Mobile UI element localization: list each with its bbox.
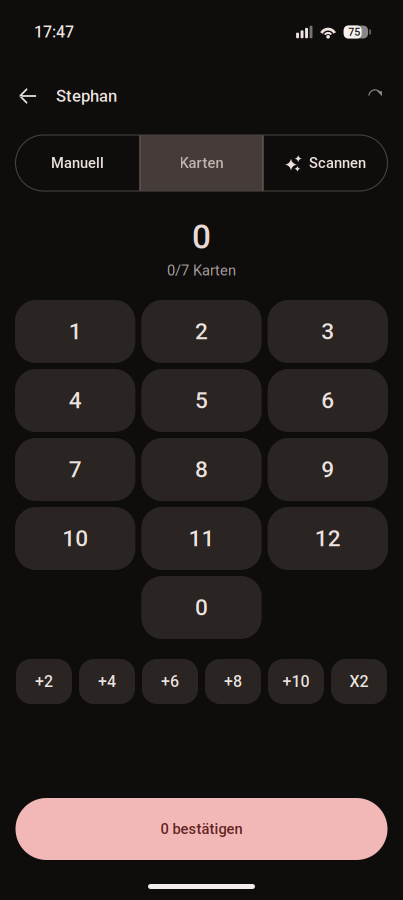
staticText: 4 xyxy=(69,387,82,414)
button[interactable]: +2 xyxy=(16,659,72,704)
staticText: 3 xyxy=(321,318,334,345)
staticText: 12 xyxy=(315,525,341,552)
button[interactable]: Manuell xyxy=(15,135,139,191)
staticText: +8 xyxy=(224,672,242,691)
button[interactable]: Refresh xyxy=(357,76,395,116)
staticText: 6 xyxy=(321,387,334,414)
button[interactable]: Scannen xyxy=(263,135,387,191)
staticText: 10 xyxy=(62,525,88,552)
staticText: 8 xyxy=(195,456,208,483)
staticText: +10 xyxy=(282,672,309,691)
button[interactable]: X2 xyxy=(331,659,387,704)
staticText: 1 xyxy=(69,318,82,345)
staticText: 0 xyxy=(195,594,208,621)
staticText: +6 xyxy=(161,672,179,691)
staticText: 0 xyxy=(192,217,211,257)
button[interactable]: 3 xyxy=(268,300,388,363)
button[interactable]: Karten xyxy=(139,135,263,191)
staticText: +4 xyxy=(98,672,116,691)
staticText: 5 xyxy=(195,387,208,414)
staticText: Scannen xyxy=(309,154,366,172)
button[interactable]: 4 xyxy=(15,369,135,432)
button[interactable]: 2 xyxy=(141,300,262,363)
staticText: 75 xyxy=(348,26,360,38)
staticText: Stephan xyxy=(56,86,117,106)
button[interactable]: 11 xyxy=(141,507,262,570)
button[interactable]: Back xyxy=(9,76,47,116)
staticText: 0/7 Karten xyxy=(167,262,236,279)
button[interactable]: 6 xyxy=(268,369,388,432)
staticText: +2 xyxy=(35,672,53,691)
staticText: 11 xyxy=(188,525,214,552)
button[interactable]: +10 xyxy=(268,659,324,704)
button[interactable]: 7 xyxy=(15,438,135,501)
staticText: Karten xyxy=(179,154,223,172)
button[interactable]: 9 xyxy=(268,438,388,501)
button[interactable]: 5 xyxy=(141,369,262,432)
button[interactable]: 0 bestätigen xyxy=(15,798,387,860)
staticText: Manuell xyxy=(51,154,104,172)
button[interactable]: 12 xyxy=(268,507,388,570)
button[interactable]: +4 xyxy=(79,659,135,704)
button[interactable]: 0 xyxy=(141,576,262,639)
button[interactable]: 10 xyxy=(15,507,135,570)
staticText: 7 xyxy=(69,456,82,483)
button[interactable]: 8 xyxy=(141,438,262,501)
staticText: 17:47 xyxy=(34,23,74,41)
button[interactable]: +8 xyxy=(205,659,261,704)
staticText: 9 xyxy=(321,456,334,483)
staticText: X2 xyxy=(349,672,368,691)
staticText: 2 xyxy=(195,318,208,345)
staticText: 0 bestätigen xyxy=(160,820,242,838)
button[interactable]: 1 xyxy=(15,300,135,363)
button[interactable]: +6 xyxy=(142,659,198,704)
